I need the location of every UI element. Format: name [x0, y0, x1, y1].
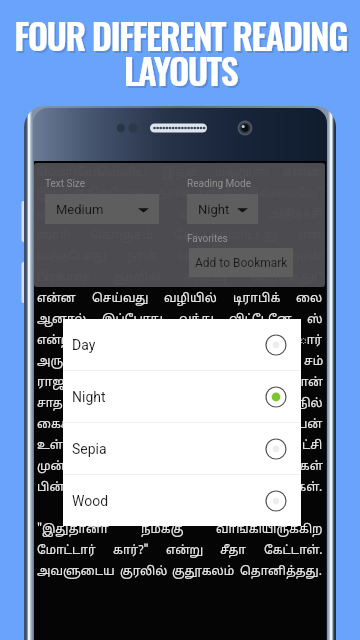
staticText: மோட்டார் [37, 544, 96, 559]
staticText: வந்து [179, 313, 215, 328]
staticText: லேட்டாகிவிட்டது [174, 229, 278, 244]
staticText: ஆரம்பித்தான் [190, 397, 279, 412]
staticText: Day [72, 337, 96, 353]
staticText: இறங்குகிறபோது [37, 187, 148, 202]
staticText: செய்வது [92, 292, 149, 307]
button[interactable]: Sepia [63, 423, 301, 474]
staticText: சென்று [97, 439, 145, 454]
staticText: மதறாள: [215, 166, 269, 181]
staticText: FOUR DIFFERENT READING [14, 9, 347, 62]
button[interactable]: Night [63, 371, 301, 422]
staticText: பை [193, 418, 217, 433]
button[interactable]: Night [187, 194, 258, 224]
staticText: அவள் [115, 208, 154, 223]
staticText: வழியில் [164, 292, 217, 307]
staticText: என்று [166, 544, 204, 559]
staticText: தொனித்தது. [240, 565, 323, 580]
staticText: என்ன [37, 292, 76, 307]
staticText: மற்றவர்கள் [249, 460, 323, 475]
staticText: Favorites [187, 233, 228, 245]
staticText: சிறிய [146, 418, 183, 433]
staticText: சீதா [220, 544, 247, 559]
staticText: செல்ல [194, 460, 238, 475]
staticText: சம் [304, 355, 323, 370]
staticText: நமக்கு [141, 523, 184, 538]
staticText: ஒரு [110, 418, 135, 433]
staticText: கைகளில் [37, 418, 99, 433]
staticText: Medium [56, 202, 104, 217]
staticText: கேட்டாள். [264, 544, 323, 559]
staticText: லை [296, 292, 323, 307]
staticText: பன் [298, 418, 323, 433]
button[interactable]: Medium [45, 194, 159, 224]
staticText: வெளியேவெளிய [37, 166, 148, 181]
staticText: உட்கா [254, 355, 293, 370]
staticText: என்றாள் [37, 208, 92, 223]
staticText: இதன [162, 166, 201, 181]
staticText: இப்போது [102, 313, 164, 328]
button[interactable]: Add to Bookmark [189, 248, 293, 277]
staticText: சிரித்தான் [216, 376, 281, 391]
staticText: வாங்கியிருக்கிற [216, 523, 323, 538]
staticText: Wood [72, 493, 109, 509]
staticText: விட்டேனே [229, 313, 292, 328]
staticText: FOUR DIFFERENT READING [16, 11, 349, 64]
staticText: Text Size [45, 178, 86, 190]
staticText: கண்களில் [178, 208, 246, 223]
staticText: ராஜா [37, 376, 73, 391]
staticText: சென்றார்கள். [237, 481, 323, 496]
staticText: என்றான் [37, 334, 94, 349]
staticText: Add to Bookmark [195, 256, 288, 270]
staticText: அவன் [250, 439, 291, 454]
staticText: என்றான் [266, 250, 323, 265]
staticText: சலிப்பு [184, 271, 227, 286]
staticText: சாதாரணமாக [37, 397, 125, 412]
staticText: இருந்தது [228, 418, 287, 433]
staticText: புன்னகை [226, 334, 289, 349]
staticText: ஆனால் [37, 313, 87, 328]
staticText: பார்க்கவில்லையே" [199, 187, 323, 202]
staticText: ான் [294, 376, 323, 391]
staticText: முன்னால் [37, 460, 100, 475]
staticText: பின்தொடர்ந்து [37, 481, 132, 496]
staticText: ார் [300, 334, 323, 349]
staticText: Night [72, 389, 106, 405]
staticText: LAYOUTS [126, 46, 239, 99]
staticText: Sepia [72, 441, 107, 457]
staticText: நில் [298, 397, 323, 412]
staticText: அருகில் [37, 355, 89, 370]
staticText: ட்சி [302, 439, 323, 454]
staticText: "இதுதானா [37, 523, 109, 538]
staticText: Night [198, 202, 230, 217]
button[interactable]: Wood [63, 475, 301, 526]
staticText: ஸ் [307, 313, 323, 328]
staticText: குரலில் [120, 565, 168, 580]
staticText: அவளுடைய [37, 565, 115, 580]
staticText: LAYOUTS [124, 44, 237, 97]
staticText: உள்ளே [37, 439, 85, 454]
staticText: Reading Mode [187, 178, 251, 190]
staticText: தெரிந்தது!" [250, 271, 323, 286]
staticText: கார்?" [113, 544, 149, 559]
staticText: குதூகலம் [172, 565, 235, 580]
staticText: நான் [158, 187, 190, 202]
staticText: பார்த்தேன் [179, 250, 246, 265]
staticText: வழிகாட்டிச் [111, 460, 182, 475]
button[interactable]: Day [63, 319, 301, 370]
